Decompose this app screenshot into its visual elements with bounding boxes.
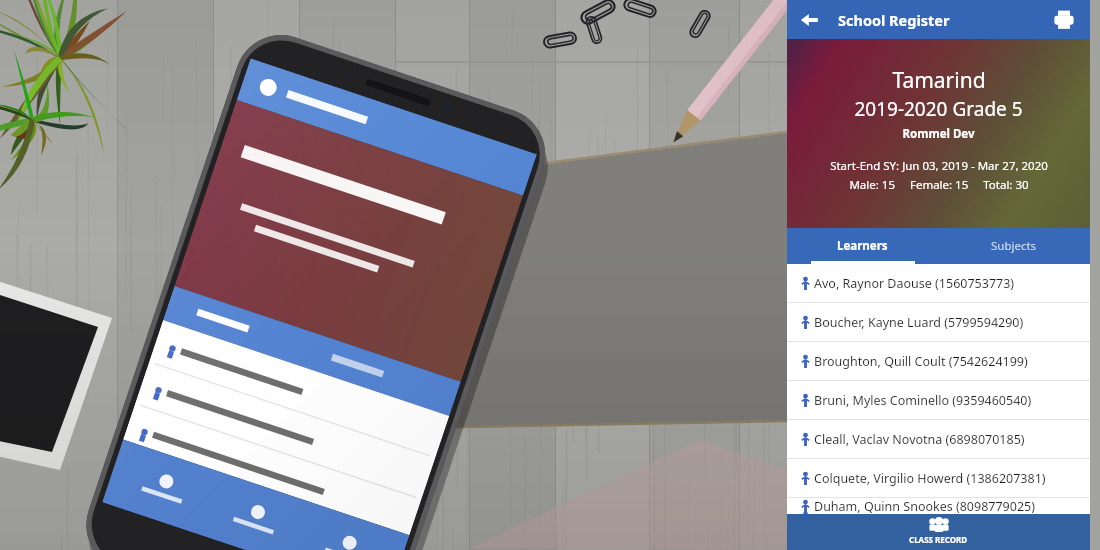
button[interactable]: Print bbox=[1051, 7, 1077, 33]
button[interactable]: Boucher, Kayne Luard (5799594290) bbox=[787, 303, 1090, 341]
staticText: 2019-2020 Grade 5 bbox=[854, 96, 1023, 122]
staticText: School Register bbox=[838, 10, 950, 30]
staticText: Subjects bbox=[991, 238, 1037, 254]
button[interactable]: Bruni, Myles Cominello (9359460540) bbox=[787, 381, 1090, 419]
button[interactable]: Cleall, Vaclav Novotna (6898070185) bbox=[787, 420, 1090, 458]
button[interactable]: Learners bbox=[787, 228, 938, 264]
staticText: Tamarind bbox=[892, 66, 986, 95]
button[interactable]: Colquete, Virgilio Howerd (1386207381) bbox=[787, 459, 1090, 497]
staticText: Learners bbox=[837, 238, 888, 254]
staticText: CLASS RECORD bbox=[909, 534, 968, 545]
button[interactable]: Broughton, Quill Coult (7542624199) bbox=[787, 342, 1090, 380]
staticText: Colquete, Virgilio Howerd (1386207381) bbox=[814, 470, 1046, 487]
staticText: Avo, Raynor Daouse (1560753773) bbox=[814, 275, 1015, 292]
staticText: Bruni, Myles Cominello (9359460540) bbox=[814, 392, 1032, 409]
button[interactable]: Avo, Raynor Daouse (1560753773) bbox=[787, 264, 1090, 302]
button[interactable]: Duham, Quinn Snookes (8098779025) bbox=[787, 498, 1090, 514]
staticText: Duham, Quinn Snookes (8098779025) bbox=[814, 498, 1035, 514]
button[interactable]: Back bbox=[795, 5, 825, 35]
staticText: Rommel Dev bbox=[902, 126, 975, 142]
staticText: Boucher, Kayne Luard (5799594290) bbox=[814, 314, 1024, 331]
staticText: Broughton, Quill Coult (7542624199) bbox=[814, 353, 1028, 370]
button[interactable]: CLASS RECORD bbox=[787, 514, 1090, 550]
button[interactable]: Subjects bbox=[938, 228, 1090, 264]
staticText: Cleall, Vaclav Novotna (6898070185) bbox=[814, 431, 1025, 448]
staticText: Start-End SY: Jun 03, 2019 - Mar 27, 202… bbox=[830, 158, 1048, 174]
staticText: Male: 15 Female: 15 Total: 30 bbox=[849, 177, 1029, 193]
